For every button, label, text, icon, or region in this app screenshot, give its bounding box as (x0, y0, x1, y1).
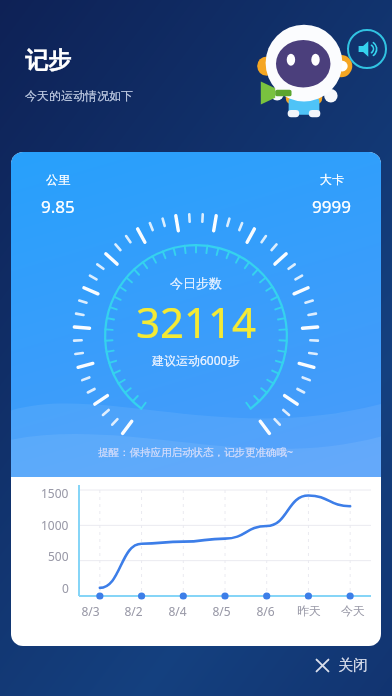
staticText: 9.85 (41, 195, 75, 218)
staticText: 8/5 (212, 603, 231, 619)
staticText: 今天的运动情况如下 (25, 88, 133, 103)
staticText: 昨天 (297, 603, 321, 618)
staticText: 1000 (41, 517, 69, 533)
staticText: 8/2 (124, 603, 143, 619)
staticText: 公里 (46, 172, 70, 187)
staticText: 大卡 (320, 172, 344, 187)
staticText: 500 (48, 548, 69, 564)
staticText: 今天 (341, 603, 365, 618)
staticText: 关闭 (338, 656, 368, 675)
button[interactable]: 关闭 (308, 651, 374, 680)
staticText: 1500 (41, 485, 69, 501)
staticText: 提醒：保持应用启动状态，记步更准确哦~ (98, 445, 294, 459)
staticText: 32114 (136, 293, 257, 350)
staticText: 0 (62, 580, 69, 596)
staticText: 建议运动6000步 (152, 352, 240, 368)
staticText: 8/3 (81, 603, 100, 619)
staticText: 8/6 (256, 603, 275, 619)
staticText: 今日步数 (170, 275, 222, 291)
button[interactable]: Sound (344, 26, 390, 72)
staticText: 9999 (312, 195, 351, 218)
staticText: 8/4 (168, 603, 187, 619)
staticText: 记步 (25, 46, 71, 75)
